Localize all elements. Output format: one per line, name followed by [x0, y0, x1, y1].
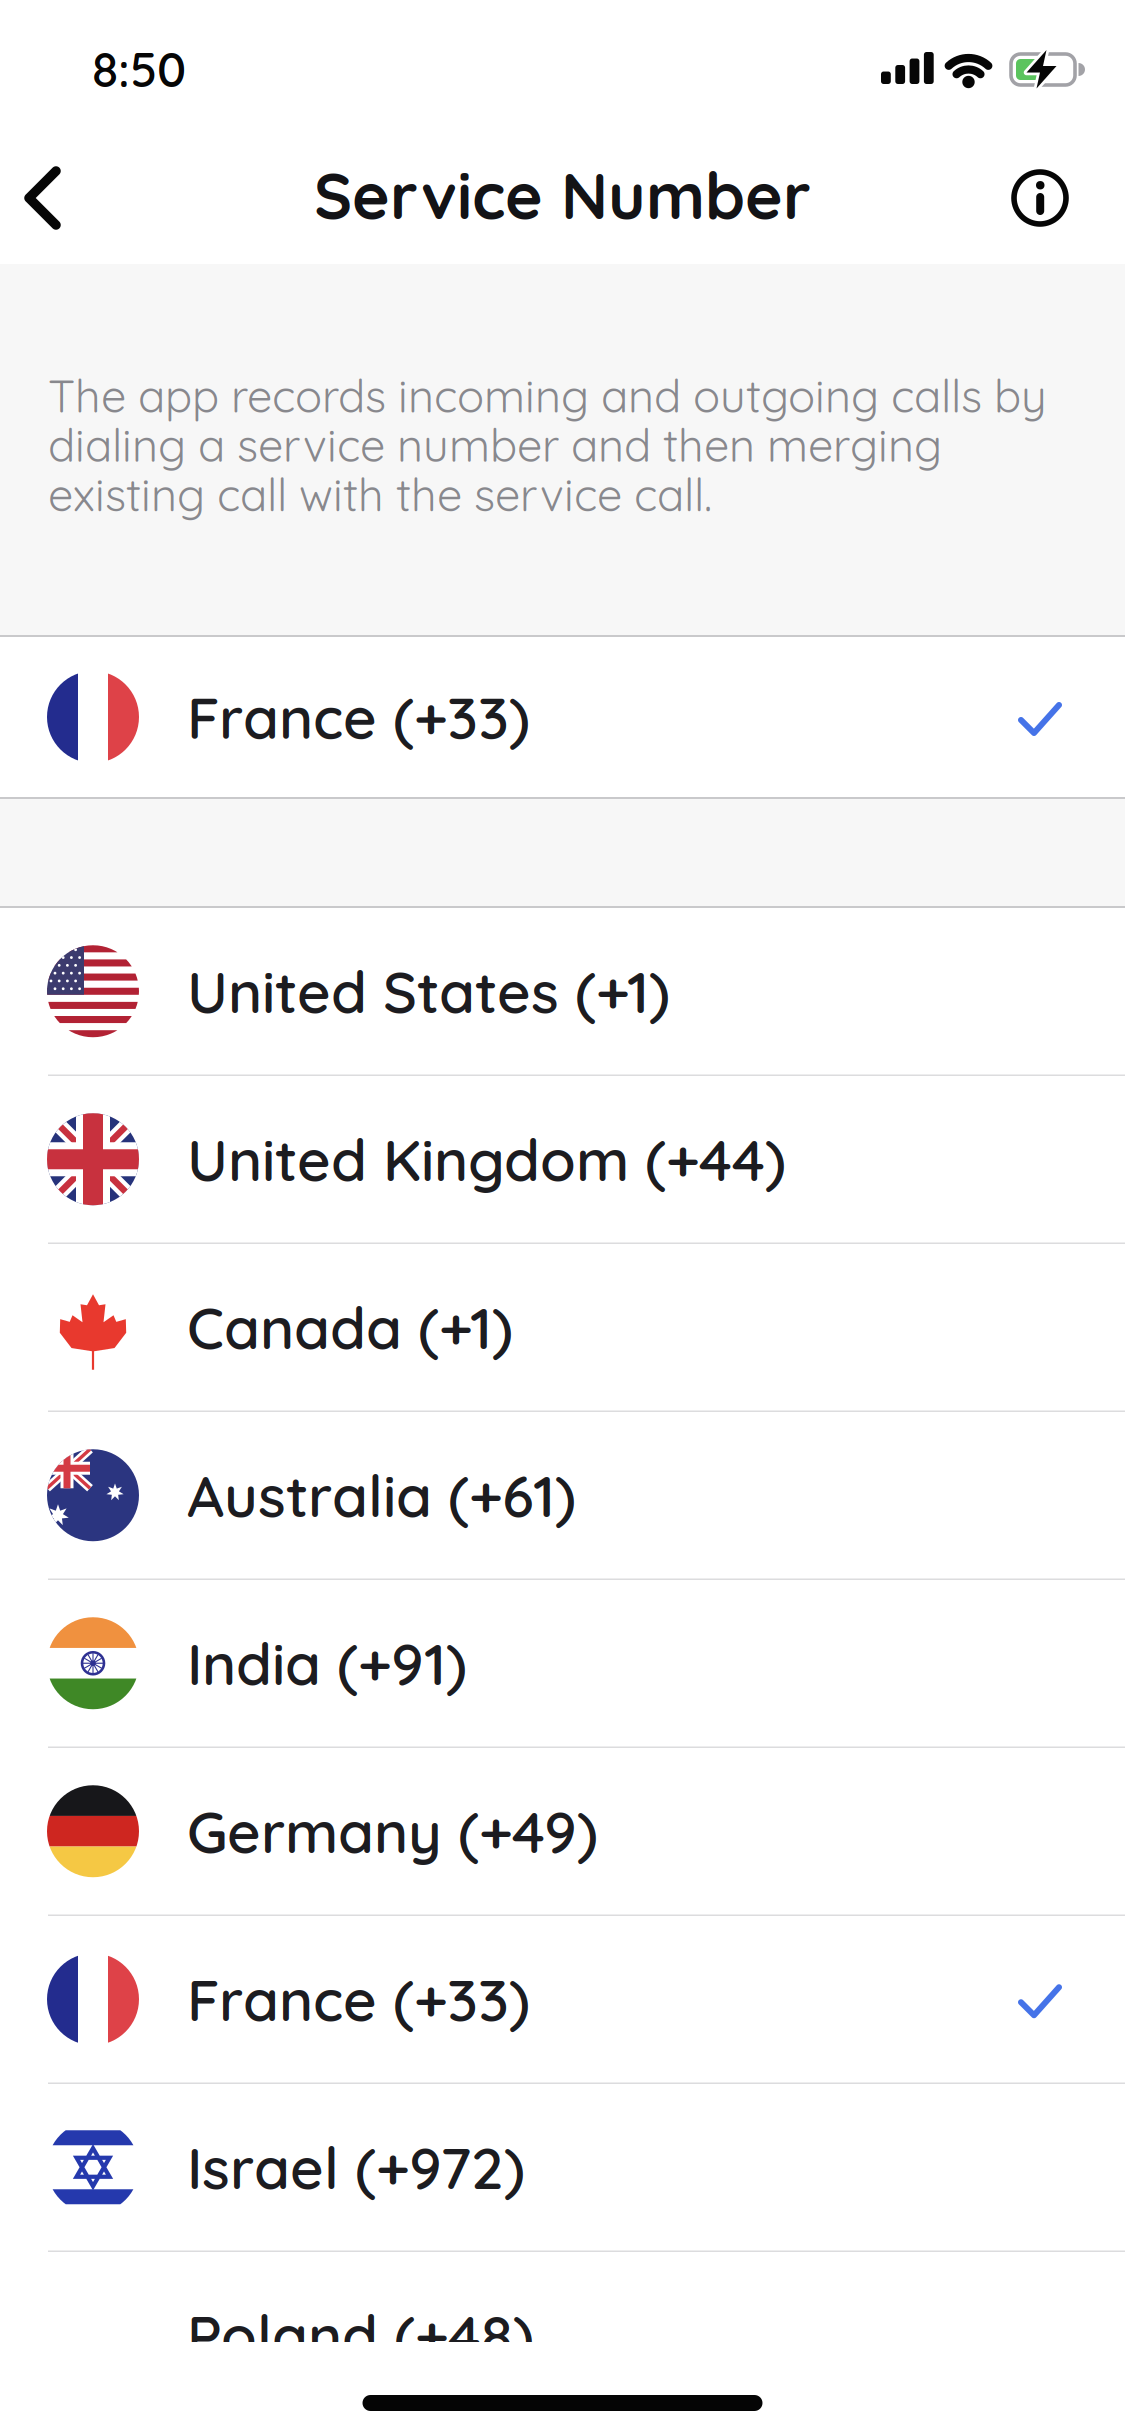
- staticText: 8:50: [92, 39, 186, 99]
- staticText: Service Number: [314, 155, 811, 235]
- button[interactable]: France (+33): [0, 1916, 1125, 2082]
- button[interactable]: France (+33): [0, 637, 1125, 797]
- button[interactable]: Germany (+49): [0, 1748, 1125, 1914]
- button[interactable]: Israel (+972): [0, 2084, 1125, 2250]
- staticText: Germany (+49): [187, 1795, 598, 1867]
- staticText: France (+33): [187, 681, 530, 753]
- staticText: United States (+1): [187, 955, 670, 1027]
- staticText: The app records incoming and outgoing ca…: [48, 371, 1047, 519]
- staticText: France (+33): [187, 1963, 530, 2035]
- staticText: Poland (+48): [187, 2299, 534, 2371]
- staticText: Australia (+61): [187, 1459, 576, 1531]
- button[interactable]: Poland (+48): [0, 2252, 1125, 2418]
- button[interactable]: United States (+1): [0, 908, 1125, 1074]
- button[interactable]: Info: [1011, 149, 1125, 247]
- staticText: Canada (+1): [187, 1291, 513, 1363]
- staticText: United Kingdom (+44): [187, 1123, 786, 1195]
- button[interactable]: Back: [0, 139, 65, 257]
- staticText: Israel (+972): [187, 2131, 525, 2203]
- staticText: India (+91): [187, 1627, 467, 1699]
- button[interactable]: United Kingdom (+44): [0, 1076, 1125, 1242]
- button[interactable]: Australia (+61): [0, 1412, 1125, 1578]
- button[interactable]: India (+91): [0, 1580, 1125, 1746]
- button[interactable]: Canada (+1): [0, 1244, 1125, 1410]
